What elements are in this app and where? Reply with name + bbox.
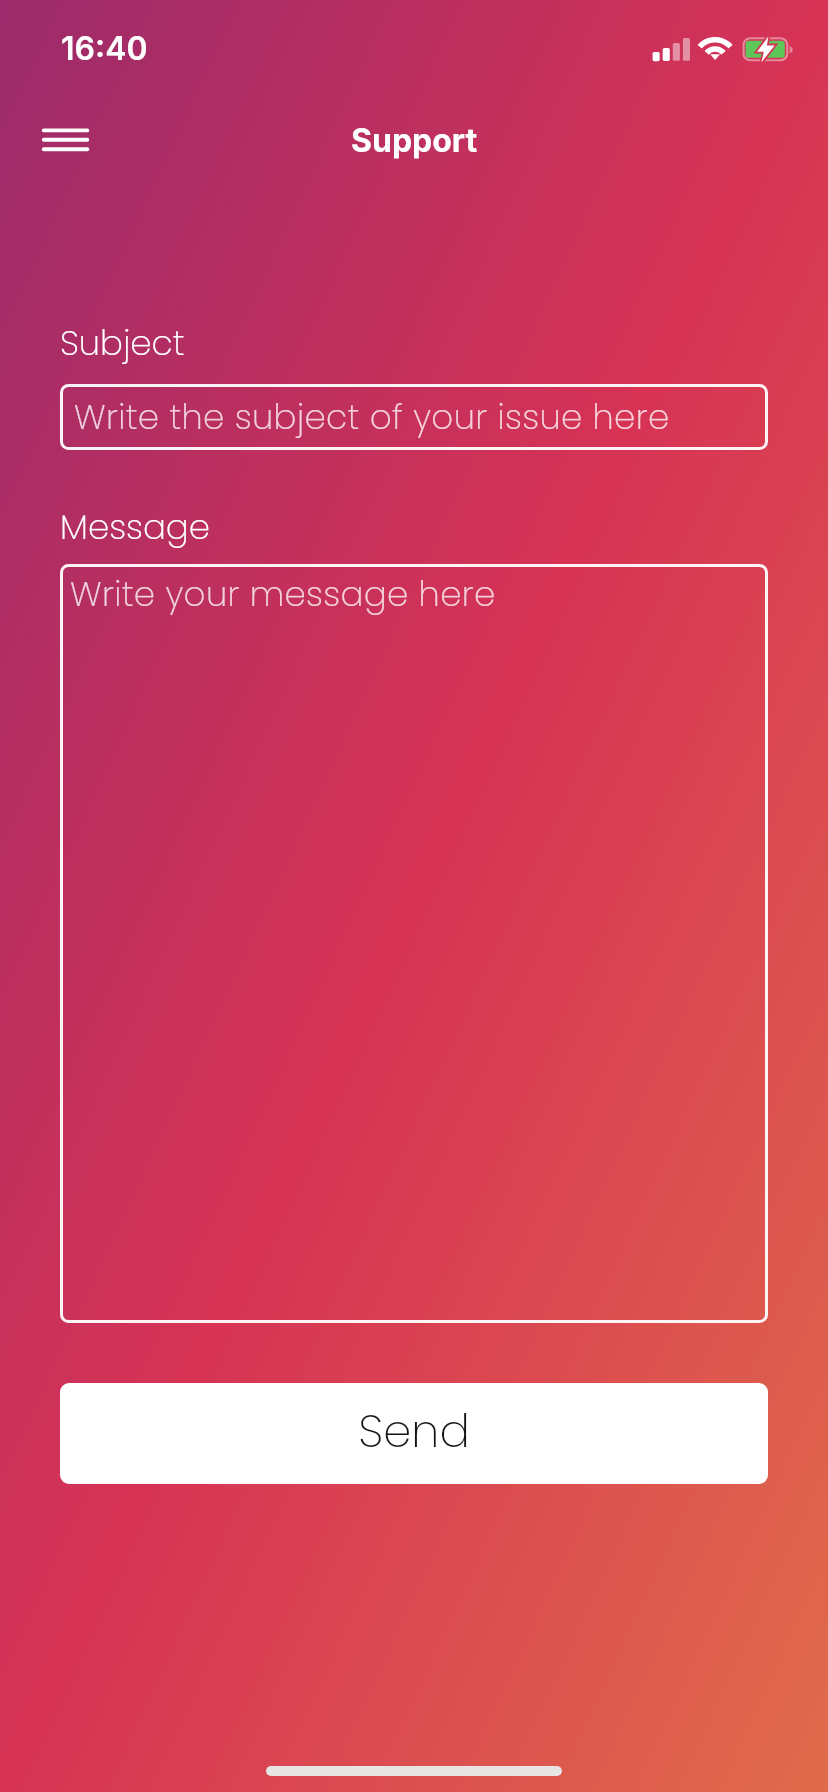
staticText: Support xyxy=(351,121,478,160)
staticText: 16:40 xyxy=(61,29,148,68)
staticText: Subject xyxy=(60,319,185,367)
button[interactable]: Open navigation menu xyxy=(22,104,98,176)
button[interactable]: Write the subject of your issue here xyxy=(60,384,768,450)
button[interactable]: Write your message here xyxy=(60,564,768,1323)
staticText: Message xyxy=(60,503,210,551)
staticText: Send xyxy=(358,1400,470,1463)
staticText: Write the subject of your issue here xyxy=(74,393,670,441)
staticText: Write your message here xyxy=(70,570,496,618)
button[interactable]: Send xyxy=(60,1383,768,1484)
